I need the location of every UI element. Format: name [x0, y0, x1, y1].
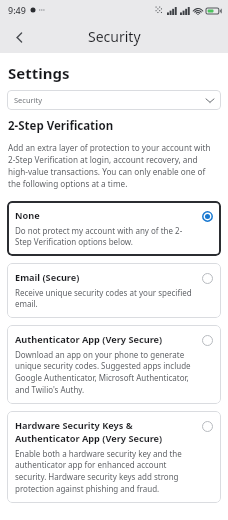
staticText: Email (Secure)	[15, 271, 80, 284]
staticText: None	[15, 209, 40, 222]
staticText: 2-Step Verification	[8, 118, 114, 134]
staticText: 9:49	[8, 4, 26, 16]
other: Hardware Security Keys & Authenticator A…	[200, 419, 214, 433]
other: Authenticator App (Very Secure)	[200, 333, 214, 347]
staticText: Security	[14, 95, 43, 105]
button[interactable]: Email (Secure)	[7, 263, 221, 318]
staticText: Security	[88, 27, 141, 46]
button[interactable]: Back	[4, 22, 34, 52]
staticText: Authenticator App (Very Secure)	[15, 333, 163, 346]
other: Email (Secure)	[200, 271, 214, 285]
button[interactable]: None	[7, 201, 221, 256]
button[interactable]: Hardware Security Keys & Authenticator A…	[7, 411, 221, 503]
staticText: Download an app on your phone to generat…	[15, 349, 194, 395]
staticText: Hardware Security Keys & Authenticator A…	[15, 419, 194, 445]
staticText: Enable both a hardware security key and …	[15, 448, 194, 494]
button[interactable]: Authenticator App (Very Secure)	[7, 325, 221, 404]
staticText: Add an extra layer of protection to your…	[8, 142, 217, 189]
other: None	[200, 209, 214, 223]
staticText: Do not protect my account with any of th…	[15, 225, 194, 247]
button[interactable]: Security	[7, 90, 221, 110]
staticText: Receive unique security codes at your sp…	[15, 287, 194, 309]
staticText: Settings	[8, 63, 70, 83]
